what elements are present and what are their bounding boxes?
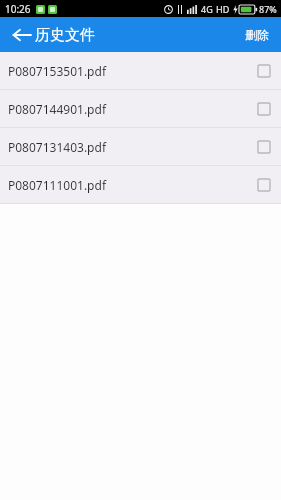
button[interactable]: 删除 (233, 19, 281, 50)
staticText: P0807111001.pdf (8, 177, 258, 193)
button[interactable]: P0807153501.pdf (0, 52, 281, 89)
staticText: 4G (201, 3, 213, 15)
button[interactable]: P0807144901.pdf (0, 90, 281, 127)
staticText: 历史文件 (35, 26, 95, 45)
staticText: 删除 (245, 27, 269, 42)
staticText: 10:26 (5, 2, 31, 16)
button[interactable]: Back (0, 21, 35, 49)
button[interactable]: P0807131403.pdf (0, 128, 281, 165)
button[interactable]: P0807111001.pdf (0, 166, 281, 203)
staticText: P0807131403.pdf (8, 139, 258, 155)
staticText: 87% (259, 3, 277, 15)
staticText: P0807144901.pdf (8, 101, 258, 117)
staticText: P0807153501.pdf (8, 63, 258, 79)
staticText: HD (216, 3, 230, 15)
